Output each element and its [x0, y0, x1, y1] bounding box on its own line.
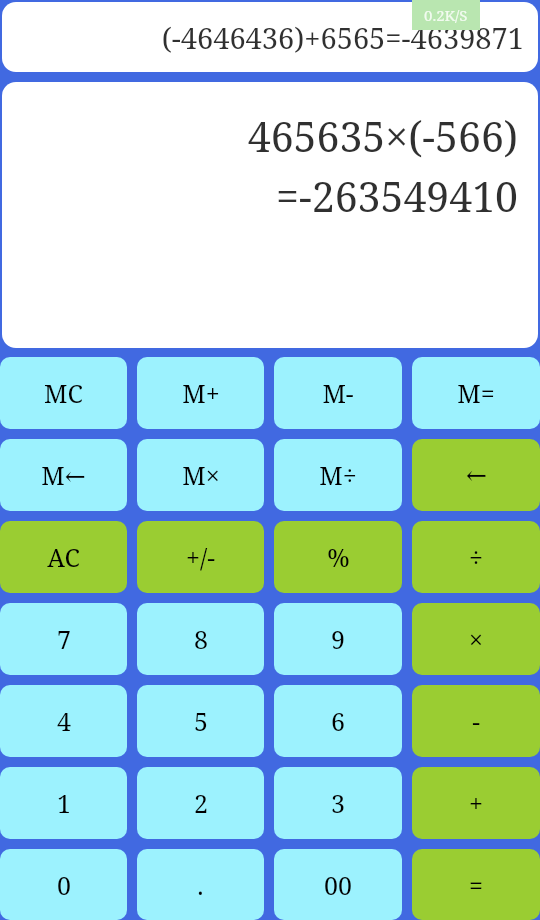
- staticText: 00: [324, 868, 352, 902]
- staticText: +/-: [186, 540, 215, 574]
- button[interactable]: M←: [0, 439, 127, 511]
- staticText: +: [469, 786, 483, 820]
- staticText: 7: [57, 622, 71, 656]
- button[interactable]: AC: [0, 521, 127, 593]
- button[interactable]: %: [274, 521, 402, 593]
- staticText: MC: [44, 376, 83, 410]
- staticText: M=: [457, 376, 495, 410]
- staticText: M←: [41, 458, 86, 492]
- staticText: -: [472, 704, 480, 738]
- staticText: ×: [469, 622, 483, 656]
- button[interactable]: Backspace: [412, 439, 540, 511]
- button[interactable]: M=: [412, 357, 540, 429]
- button[interactable]: +/-: [137, 521, 264, 593]
- staticText: 465635×(-566): [247, 108, 518, 164]
- button[interactable]: +: [412, 767, 540, 839]
- button[interactable]: 00: [274, 849, 402, 920]
- staticText: ←: [466, 461, 487, 490]
- staticText: ÷: [469, 540, 483, 574]
- button[interactable]: 3: [274, 767, 402, 839]
- button[interactable]: M+: [137, 357, 264, 429]
- staticText: 3: [331, 786, 345, 820]
- button[interactable]: 6: [274, 685, 402, 757]
- staticText: =-263549410: [276, 168, 518, 224]
- staticText: 9: [331, 622, 345, 656]
- button[interactable]: ÷: [412, 521, 540, 593]
- staticText: =: [469, 868, 483, 902]
- staticText: M-: [322, 376, 354, 410]
- button[interactable]: -: [412, 685, 540, 757]
- button[interactable]: 7: [0, 603, 127, 675]
- button[interactable]: 0: [0, 849, 127, 920]
- button[interactable]: 5: [137, 685, 264, 757]
- staticText: 2: [194, 786, 208, 820]
- button[interactable]: 465635×(-566): [2, 82, 538, 348]
- staticText: 5: [194, 704, 208, 738]
- button[interactable]: 8: [137, 603, 264, 675]
- button[interactable]: (-4646436)+6565=-4639871: [2, 2, 538, 72]
- staticText: .: [197, 868, 204, 902]
- staticText: M×: [182, 458, 220, 492]
- button[interactable]: M÷: [274, 439, 402, 511]
- staticText: 1: [57, 786, 71, 820]
- button[interactable]: 4: [0, 685, 127, 757]
- button[interactable]: M×: [137, 439, 264, 511]
- staticText: AC: [47, 540, 80, 574]
- button[interactable]: MC: [0, 357, 127, 429]
- staticText: M+: [182, 376, 220, 410]
- staticText: 6: [331, 704, 345, 738]
- staticText: 0.2K/S: [424, 5, 468, 25]
- button[interactable]: 9: [274, 603, 402, 675]
- button[interactable]: .: [137, 849, 264, 920]
- staticText: (-4646436)+6565=-4639871: [161, 18, 524, 57]
- staticText: M÷: [319, 458, 357, 492]
- button[interactable]: ×: [412, 603, 540, 675]
- staticText: 0: [57, 868, 71, 902]
- staticText: 8: [194, 622, 208, 656]
- button[interactable]: =: [412, 849, 540, 920]
- button[interactable]: M-: [274, 357, 402, 429]
- staticText: %: [327, 540, 350, 574]
- button[interactable]: 1: [0, 767, 127, 839]
- button[interactable]: 2: [137, 767, 264, 839]
- staticText: 4: [57, 704, 71, 738]
